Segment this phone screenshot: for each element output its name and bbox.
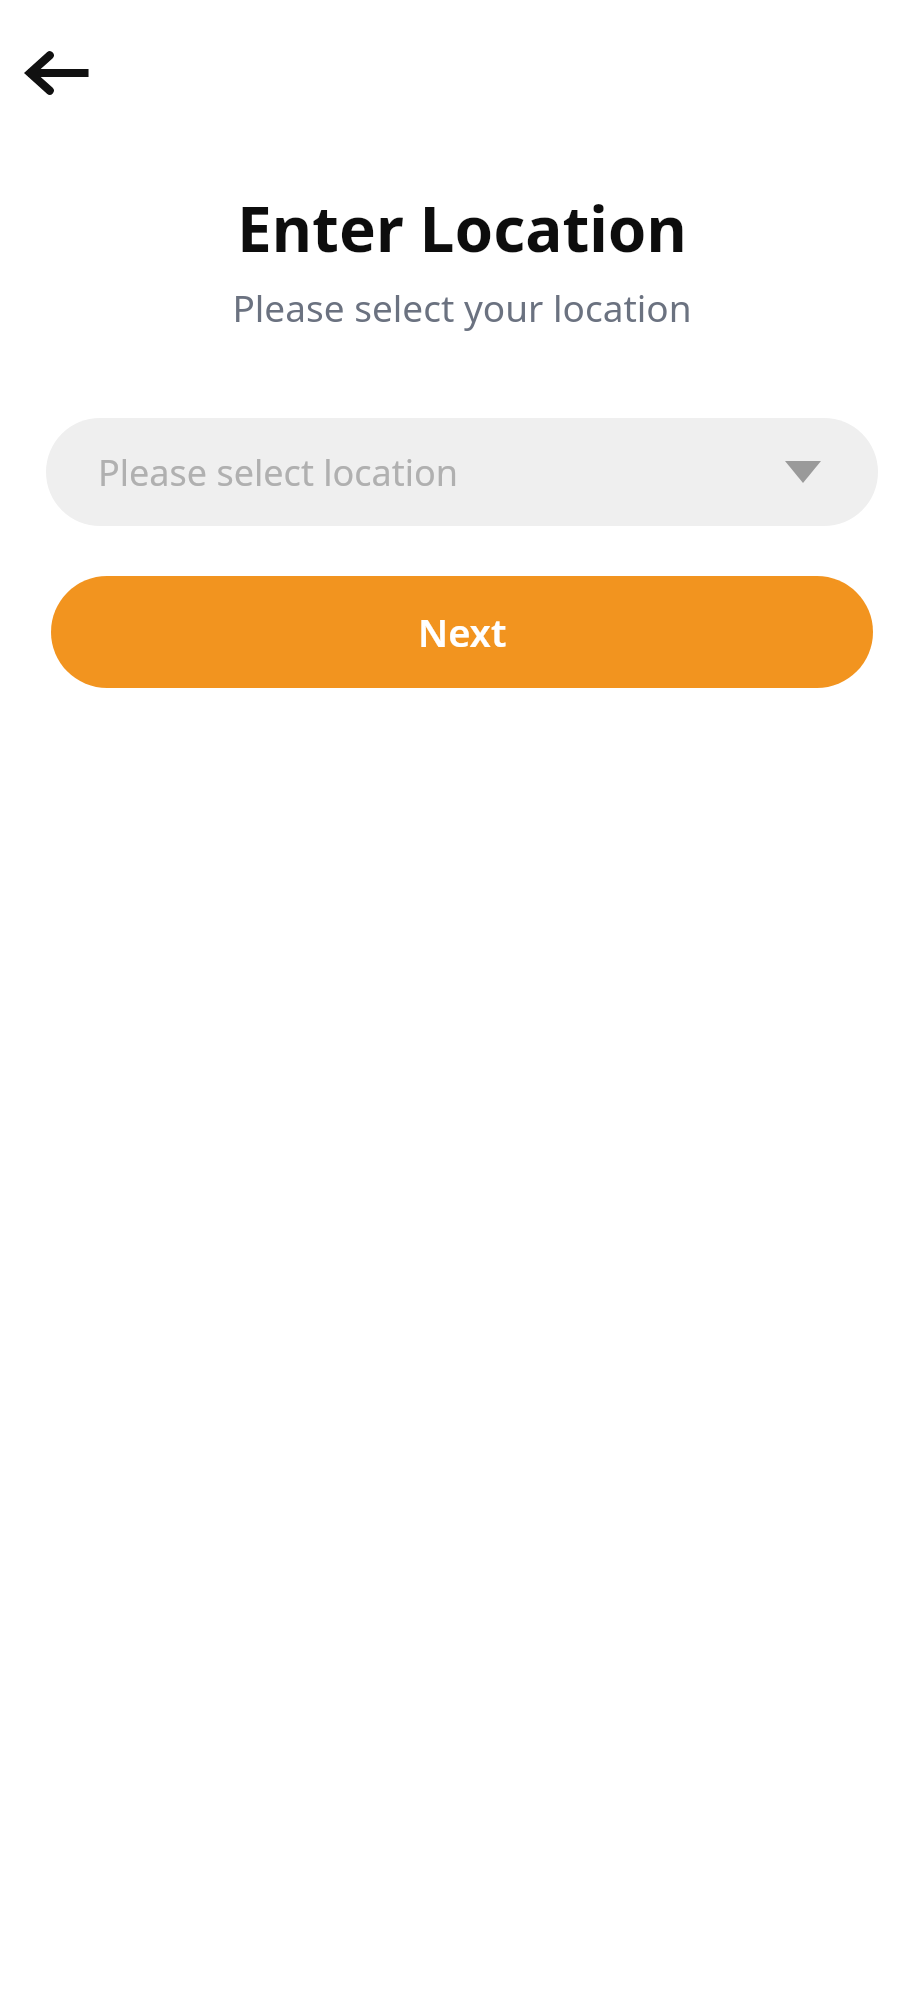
button[interactable]: Next bbox=[51, 576, 873, 688]
button[interactable]: Back bbox=[22, 38, 92, 108]
staticText: Please select location bbox=[98, 448, 459, 497]
staticText: Next bbox=[418, 606, 507, 658]
staticText: Please select your location bbox=[0, 282, 924, 332]
button[interactable]: Please select location bbox=[46, 418, 878, 526]
staticText: Enter Location bbox=[0, 186, 924, 270]
